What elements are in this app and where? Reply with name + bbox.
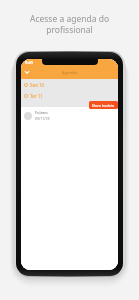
other: Expand xyxy=(24,69,30,75)
staticText: Seg 10 xyxy=(30,82,45,87)
button[interactable]: Novo horário xyxy=(89,101,118,109)
staticText: Ter 11 xyxy=(30,93,43,98)
staticText: 9:41 xyxy=(25,60,33,65)
staticText: Fulano xyxy=(35,110,48,115)
button[interactable]: Seg 10 xyxy=(24,82,118,87)
button[interactable]: Ter 11 xyxy=(24,93,118,98)
staticText: 09/11/18 xyxy=(35,116,50,121)
button[interactable]: Expand xyxy=(21,65,118,79)
staticText: Novo horário xyxy=(92,103,115,108)
staticText: Agendar xyxy=(62,70,78,75)
staticText: Acesse a agenda do profissional xyxy=(0,13,139,35)
